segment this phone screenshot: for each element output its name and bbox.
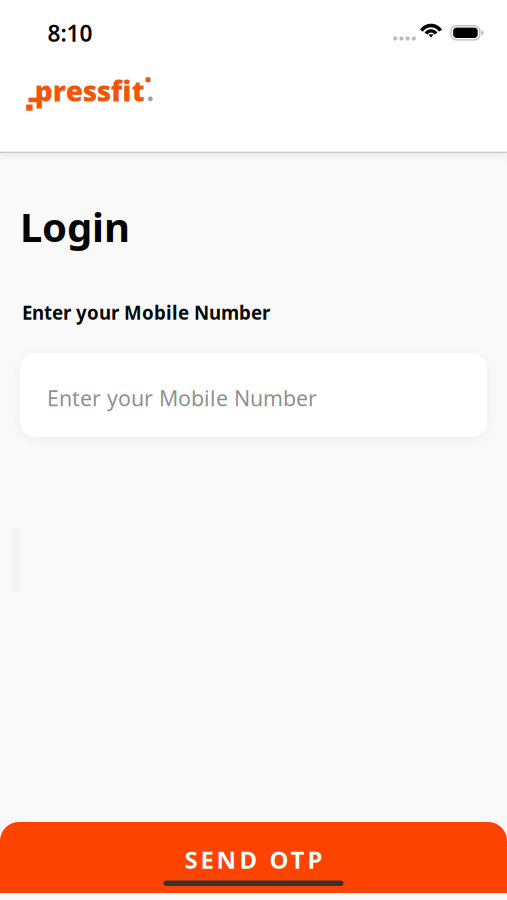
- staticText: Enter your Mobile Number: [22, 300, 270, 325]
- staticText: SEND OTP: [184, 843, 322, 875]
- staticText: pressfit: [35, 72, 145, 109]
- staticText: 8:10: [47, 18, 92, 48]
- button[interactable]: SEND OTP: [0, 822, 507, 893]
- staticText: Login: [20, 200, 130, 253]
- button[interactable]: Enter your Mobile Number: [20, 353, 487, 437]
- staticText: Enter your Mobile Number: [47, 384, 317, 412]
